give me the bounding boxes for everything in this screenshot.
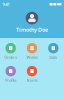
staticText: Stats	[49, 55, 57, 60]
button[interactable]: Orders	[0, 43, 21, 60]
button[interactable]: Wallet	[21, 43, 43, 60]
button[interactable]: Alerts	[21, 66, 43, 83]
staticText: Orders	[4, 55, 17, 60]
button[interactable]: Profile	[0, 66, 21, 83]
staticText: Alerts	[26, 77, 37, 83]
staticText: Timothy Doe	[16, 26, 48, 33]
button[interactable]: Stats	[43, 43, 64, 60]
staticText: Wallet	[26, 55, 37, 60]
staticText: 9:41	[2, 2, 9, 7]
staticText: Profile	[5, 77, 16, 83]
